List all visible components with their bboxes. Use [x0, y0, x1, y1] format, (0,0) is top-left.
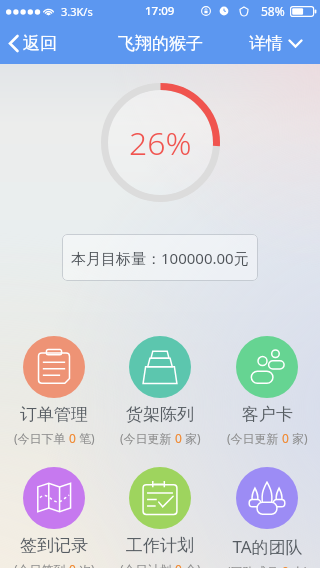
- staticText: 3.3K/s: [61, 4, 93, 19]
- button[interactable]: 订单管理: [1, 336, 107, 446]
- staticText: 工作计划: [126, 535, 194, 556]
- staticText: 家): [182, 430, 201, 446]
- staticText: 飞翔的猴子: [118, 33, 203, 54]
- staticText: 58%: [261, 3, 285, 19]
- staticText: (今日下单: [14, 430, 69, 446]
- staticText: (今日签到: [14, 561, 69, 568]
- button[interactable]: 详情: [239, 25, 320, 62]
- staticText: (团队成员: [227, 563, 282, 568]
- button[interactable]: 本月目标量：100000.00元: [62, 234, 258, 281]
- staticText: 17:09: [145, 3, 175, 19]
- staticText: 笔): [76, 430, 95, 446]
- staticText: TA的团队: [232, 535, 303, 558]
- staticText: 详情: [249, 33, 283, 54]
- button[interactable]: 货架陈列: [107, 336, 213, 446]
- staticText: 26%: [129, 121, 192, 165]
- staticText: 个): [182, 561, 201, 568]
- staticText: 0: [282, 563, 289, 568]
- button[interactable]: 签到记录: [1, 467, 107, 568]
- staticText: (今日更新: [120, 430, 175, 446]
- button[interactable]: 返回: [0, 25, 67, 62]
- staticText: 客户卡: [242, 404, 293, 425]
- staticText: 订单管理: [20, 404, 88, 425]
- staticText: (今日计划: [120, 561, 175, 568]
- staticText: 0: [175, 561, 182, 568]
- staticText: 0: [69, 561, 76, 568]
- staticText: 0: [282, 430, 289, 446]
- button[interactable]: 工作计划: [107, 467, 213, 568]
- button[interactable]: 客户卡: [214, 336, 320, 446]
- staticText: 人): [289, 563, 308, 568]
- staticText: 返回: [23, 33, 57, 54]
- button[interactable]: TA的团队: [214, 467, 320, 568]
- staticText: (今日更新: [227, 430, 282, 446]
- staticText: 货架陈列: [126, 404, 194, 425]
- staticText: 0: [175, 430, 182, 446]
- staticText: 0: [69, 430, 76, 446]
- staticText: 签到记录: [20, 535, 88, 556]
- staticText: 本月目标量：100000.00元: [71, 248, 249, 268]
- staticText: 家): [289, 430, 308, 446]
- staticText: 次): [76, 561, 95, 568]
